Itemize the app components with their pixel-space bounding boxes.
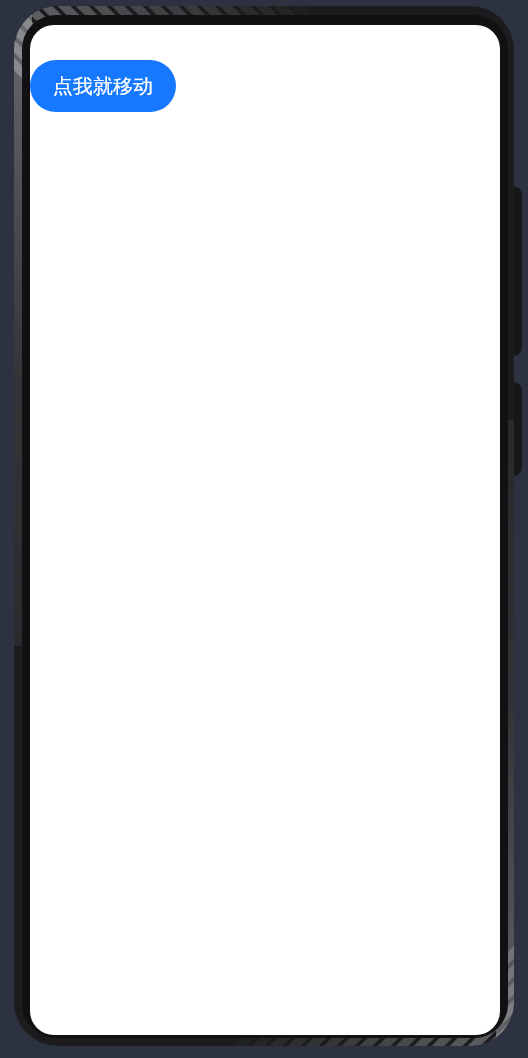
- staticText: 点我就移动: [53, 74, 153, 99]
- button[interactable]: 点我就移动: [30, 60, 176, 112]
